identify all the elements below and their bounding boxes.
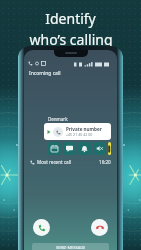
staticText: 16:20: [99, 159, 111, 165]
button[interactable]: Alarm: [78, 142, 91, 155]
button[interactable]: Decline call: [91, 219, 108, 236]
staticText: Most recent call: [37, 159, 72, 165]
button[interactable]: Message: [63, 142, 76, 155]
staticText: Denmark: [48, 116, 68, 122]
staticText: Identify: [45, 9, 96, 28]
button[interactable]: Calendar: [48, 142, 61, 155]
staticText: SEND MESSAGE: [56, 245, 86, 250]
button[interactable]: Mute: [93, 142, 106, 155]
staticText: +45 21 40 42 00: [66, 132, 93, 137]
button[interactable]: Block: [108, 142, 111, 155]
staticText: Private number: [66, 126, 102, 132]
button[interactable]: Answer call: [33, 219, 50, 236]
button[interactable]: SEND MESSAGE: [32, 243, 109, 250]
staticText: Incoming call: [29, 70, 61, 77]
staticText: who’s calling: [29, 30, 113, 49]
button[interactable]: Private number: [44, 123, 111, 140]
